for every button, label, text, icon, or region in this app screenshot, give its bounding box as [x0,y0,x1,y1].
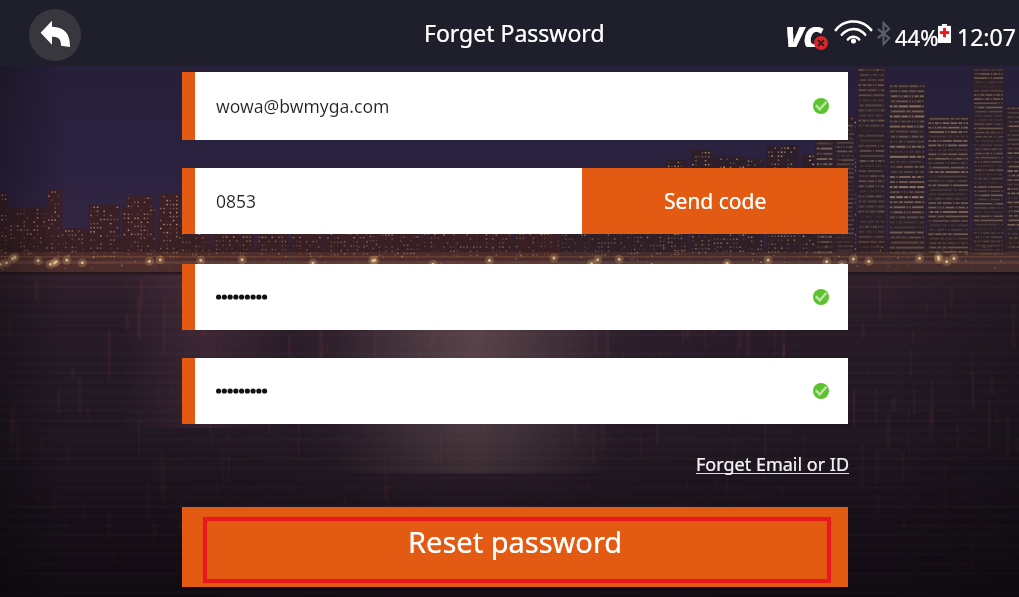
button[interactable] [182,358,848,424]
staticText: Forget Email or ID [696,452,850,477]
staticText: Send code [664,187,767,216]
staticText: Reset password [408,522,623,561]
staticText: 0853 [216,189,257,213]
button[interactable]: Reset password [182,507,848,587]
staticText: wowa@bwmyga.com [216,94,390,118]
staticText: VC! [785,17,831,47]
staticText: Forget Password [424,17,605,48]
button[interactable]: Back [29,9,81,61]
staticText: 44% [895,22,939,52]
button[interactable] [182,264,848,330]
button[interactable]: Forget Email or ID [696,452,850,477]
button[interactable]: wowa@bwmyga.com [182,72,848,140]
button[interactable]: Send code [582,168,848,234]
button[interactable]: 0853 [195,168,582,234]
staticText: 12:07 [957,21,1016,52]
